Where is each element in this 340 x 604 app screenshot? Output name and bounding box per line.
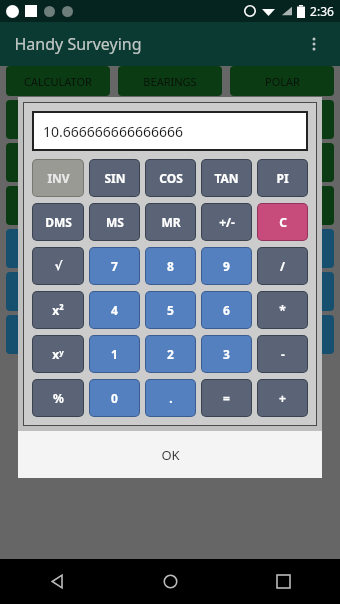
button[interactable]: +/- bbox=[202, 204, 251, 240]
staticText: MR bbox=[161, 214, 181, 230]
staticText: . bbox=[169, 390, 173, 406]
button[interactable]: MR bbox=[146, 204, 195, 240]
staticText: PI bbox=[276, 170, 289, 186]
button[interactable] bbox=[118, 186, 222, 225]
button[interactable]: More options bbox=[298, 28, 330, 60]
button[interactable] bbox=[118, 143, 222, 182]
staticText: 5 bbox=[167, 302, 174, 318]
button[interactable]: 7 bbox=[90, 248, 139, 284]
button[interactable]: 8 bbox=[146, 248, 195, 284]
button[interactable]: √ bbox=[33, 248, 83, 284]
button[interactable]: OK bbox=[18, 431, 322, 478]
button[interactable]: Home bbox=[114, 559, 227, 604]
staticText: MS bbox=[106, 214, 124, 230]
staticText: 10.666666666666666 bbox=[43, 122, 183, 141]
button[interactable]: = bbox=[202, 380, 251, 416]
button[interactable] bbox=[6, 315, 110, 354]
staticText: 7 bbox=[111, 258, 118, 274]
staticText: 9 bbox=[223, 258, 230, 274]
staticText: xʸ bbox=[52, 346, 64, 362]
staticText: +/- bbox=[219, 214, 235, 230]
staticText: √ bbox=[54, 259, 63, 273]
staticText: CALCULATOR bbox=[24, 74, 92, 89]
button[interactable]: 9 bbox=[202, 248, 251, 284]
staticText: + bbox=[279, 390, 286, 406]
staticText: 1 bbox=[111, 346, 118, 362]
button[interactable]: 4 bbox=[90, 292, 139, 328]
button[interactable]: COS bbox=[146, 160, 195, 196]
button[interactable]: - bbox=[258, 336, 307, 372]
button[interactable] bbox=[230, 272, 334, 311]
button[interactable]: Recents bbox=[227, 559, 340, 604]
button[interactable] bbox=[6, 186, 110, 225]
staticText: * bbox=[279, 302, 286, 318]
button[interactable]: 2 bbox=[146, 336, 195, 372]
staticText: / bbox=[280, 258, 285, 274]
button[interactable]: % bbox=[33, 380, 83, 416]
staticText: POLAR bbox=[265, 74, 300, 89]
button[interactable] bbox=[118, 229, 222, 268]
button[interactable] bbox=[118, 272, 222, 311]
button[interactable] bbox=[6, 272, 110, 311]
button[interactable] bbox=[230, 100, 334, 139]
button[interactable]: 3 bbox=[202, 336, 251, 372]
staticText: Handy Surveying bbox=[14, 33, 142, 55]
button[interactable]: Back bbox=[0, 559, 114, 604]
staticText: 0 bbox=[111, 390, 118, 406]
staticText: x² bbox=[52, 302, 64, 318]
button[interactable] bbox=[230, 229, 334, 268]
button[interactable]: PI bbox=[258, 160, 307, 196]
staticText: SIN bbox=[104, 170, 126, 186]
staticText: 3 bbox=[223, 346, 230, 362]
button[interactable]: TAN bbox=[202, 160, 251, 196]
staticText: INV bbox=[47, 170, 70, 186]
button[interactable]: SIN bbox=[90, 160, 139, 196]
button[interactable] bbox=[230, 143, 334, 182]
button[interactable]: . bbox=[146, 380, 195, 416]
staticText: TAN bbox=[214, 170, 239, 186]
button[interactable] bbox=[6, 229, 110, 268]
button[interactable] bbox=[118, 315, 222, 354]
staticText: BEARINGS bbox=[143, 74, 197, 89]
button[interactable]: CALCULATOR bbox=[6, 66, 110, 96]
staticText: 6 bbox=[223, 302, 230, 318]
button[interactable] bbox=[6, 100, 110, 139]
button[interactable] bbox=[118, 100, 222, 139]
button[interactable]: MS bbox=[90, 204, 139, 240]
button[interactable]: 1 bbox=[90, 336, 139, 372]
button[interactable]: xʸ bbox=[33, 336, 83, 372]
staticText: DMS bbox=[45, 214, 72, 230]
button[interactable] bbox=[6, 143, 110, 182]
button[interactable]: x² bbox=[33, 292, 83, 328]
staticText: 2:36 bbox=[310, 3, 334, 19]
button[interactable]: 5 bbox=[146, 292, 195, 328]
button[interactable]: + bbox=[258, 380, 307, 416]
button[interactable] bbox=[230, 186, 334, 225]
button[interactable]: BEARINGS bbox=[118, 66, 222, 96]
button[interactable]: POLAR bbox=[230, 66, 334, 96]
button[interactable]: / bbox=[258, 248, 307, 284]
button[interactable]: DMS bbox=[33, 204, 83, 240]
button[interactable]: 0 bbox=[90, 380, 139, 416]
staticText: 8 bbox=[167, 258, 174, 274]
button[interactable]: INV bbox=[33, 160, 83, 196]
button[interactable]: 6 bbox=[202, 292, 251, 328]
button[interactable]: C bbox=[258, 204, 307, 240]
staticText: - bbox=[281, 346, 285, 362]
staticText: = bbox=[223, 390, 230, 406]
staticText: COS bbox=[159, 170, 183, 186]
button[interactable] bbox=[230, 315, 334, 354]
staticText: 2 bbox=[167, 346, 174, 362]
staticText: % bbox=[53, 390, 64, 406]
staticText: C bbox=[279, 214, 287, 230]
button[interactable]: * bbox=[258, 292, 307, 328]
staticText: 4 bbox=[111, 302, 118, 318]
staticText: OK bbox=[161, 446, 180, 464]
